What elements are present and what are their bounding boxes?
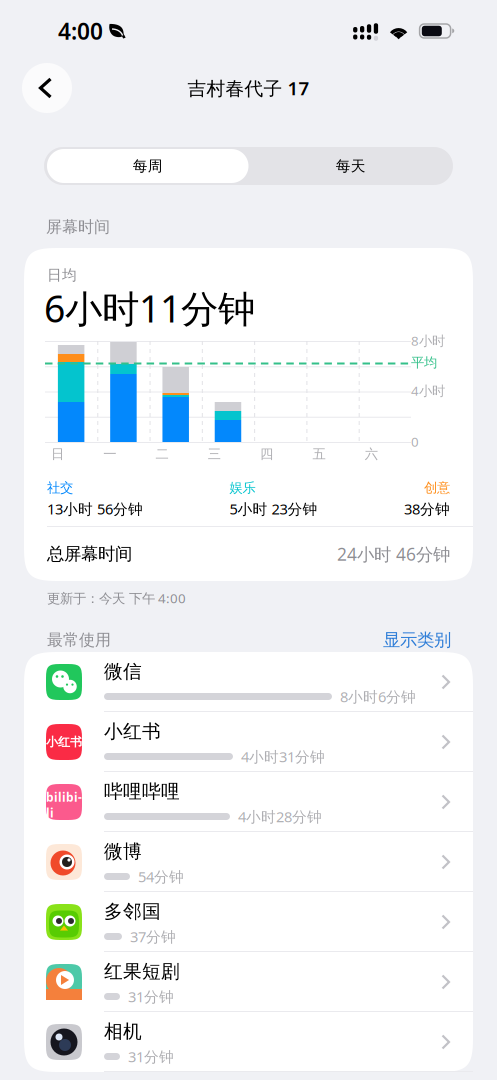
- button[interactable]: 每周: [44, 149, 248, 183]
- staticText: 多邻国: [104, 900, 161, 923]
- button[interactable]: 多邻国: [24, 892, 473, 952]
- staticText: 37分钟: [130, 927, 176, 946]
- staticText: 创意: [424, 480, 450, 496]
- staticText: 显示类别: [383, 629, 451, 651]
- staticText: 0: [411, 433, 419, 450]
- button[interactable]: 每天: [248, 149, 453, 183]
- staticText: 相机: [104, 1020, 142, 1043]
- staticText: 哔哩哔哩: [104, 780, 180, 803]
- staticText: 三: [208, 446, 221, 462]
- staticText: 微博: [104, 840, 142, 863]
- staticText: 8小时6分钟: [340, 687, 416, 706]
- staticText: 四: [260, 446, 273, 462]
- staticText: 更新于：今天 下午 4:00: [47, 589, 186, 607]
- button[interactable]: bilibili: [24, 772, 473, 832]
- staticText: 娱乐: [229, 480, 255, 496]
- button[interactable]: 微博: [24, 832, 473, 892]
- button[interactable]: 微信: [24, 652, 473, 712]
- staticText: 小红书: [104, 720, 161, 743]
- staticText: 31分钟: [128, 987, 174, 1006]
- staticText: 二: [156, 446, 169, 462]
- staticText: 日均: [47, 266, 77, 284]
- staticText: 4小时31分钟: [241, 747, 325, 766]
- staticText: 4:00: [58, 16, 103, 46]
- button[interactable]: 显示类别: [383, 629, 451, 651]
- staticText: 每天: [336, 157, 366, 175]
- staticText: 一: [103, 446, 116, 462]
- staticText: 24小时 46分钟: [337, 542, 450, 565]
- staticText: 4小时: [411, 382, 445, 399]
- button[interactable]: 小红书: [24, 712, 473, 772]
- staticText: 六: [365, 446, 378, 462]
- staticText: 五: [312, 446, 325, 462]
- staticText: 平均: [411, 354, 437, 371]
- button[interactable]: 红果短剧: [24, 952, 473, 1012]
- staticText: 红果短剧: [104, 960, 180, 983]
- staticText: 屏幕时间: [46, 217, 110, 237]
- staticText: 微信: [104, 660, 142, 683]
- staticText: 31分钟: [128, 1047, 174, 1066]
- staticText: 38分钟: [404, 499, 450, 518]
- staticText: 小红书: [46, 735, 82, 749]
- staticText: 6小时11分钟: [44, 283, 255, 333]
- staticText: 总屏幕时间: [47, 543, 132, 565]
- staticText: 日: [51, 446, 64, 462]
- staticText: 5小时 23分钟: [229, 499, 317, 518]
- staticText: 吉村春代子 17: [187, 76, 309, 100]
- staticText: 54分钟: [138, 867, 184, 886]
- staticText: 最常使用: [47, 630, 111, 650]
- button[interactable]: Back: [22, 63, 72, 113]
- staticText: bilibili: [46, 789, 82, 821]
- button[interactable]: 相机: [24, 1012, 473, 1072]
- staticText: 8小时: [411, 332, 445, 349]
- staticText: 13小时 56分钟: [47, 499, 143, 518]
- staticText: 每周: [133, 157, 163, 175]
- staticText: 社交: [47, 480, 73, 496]
- staticText: 4小时28分钟: [238, 807, 322, 826]
